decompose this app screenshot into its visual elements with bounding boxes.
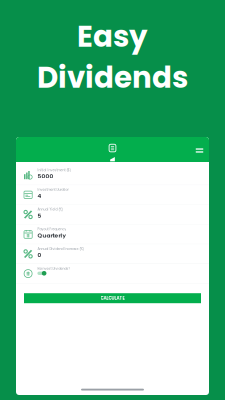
button[interactable]: Reinvest Dividends? (16, 264, 209, 284)
staticText: 4 (37, 192, 41, 200)
button[interactable]: Investment Duration (16, 185, 209, 205)
staticText: Payout Frequency (37, 227, 66, 231)
button[interactable]: Initial Investment ($) (16, 165, 209, 185)
staticText: Initial Investment ($) (37, 168, 70, 172)
staticText: Investment Duration (37, 187, 69, 192)
staticText: Annual Yield (%) (37, 207, 62, 212)
button[interactable]: Annual Dividend Increase (%) (16, 244, 209, 264)
staticText: 0 (37, 251, 41, 259)
button[interactable]: Annual Yield (%) (16, 205, 209, 225)
button[interactable]: CALCULATE (24, 293, 201, 303)
staticText: Annual Dividend Increase (%) (37, 246, 83, 251)
button[interactable]: Menu (191, 142, 207, 158)
staticText: CALCULATE (100, 295, 124, 301)
button[interactable]: Payout Frequency (16, 225, 209, 244)
staticText: Reinvest Dividends? (37, 266, 70, 271)
staticText: Quarterly (37, 231, 65, 239)
staticText: Easy (77, 16, 148, 57)
staticText: 5000 (37, 172, 53, 180)
staticText: Dividends (37, 57, 188, 98)
staticText: 5 (37, 212, 41, 220)
